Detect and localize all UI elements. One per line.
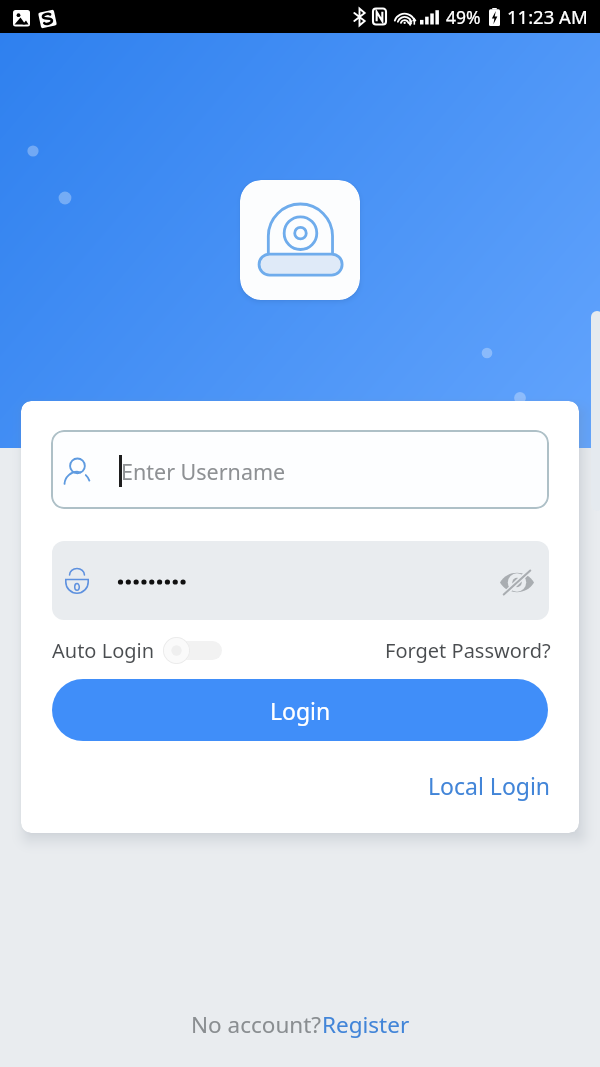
staticText: 11:23 AM (507, 4, 588, 29)
button[interactable]: Login (52, 679, 548, 741)
button[interactable]: Show password (491, 556, 543, 608)
staticText: Auto Login (52, 637, 155, 664)
button[interactable]: Forget Password? (385, 637, 551, 664)
staticText: No account? (191, 1009, 322, 1040)
button[interactable]: Auto Login (159, 631, 229, 675)
button[interactable]: Local Login (428, 770, 551, 801)
staticText: Enter Username (121, 457, 286, 486)
staticText: Login (270, 695, 331, 726)
button[interactable]: Show password (52, 541, 549, 620)
button[interactable]: Enter Username (51, 430, 549, 509)
staticText: 49% (446, 5, 481, 29)
button[interactable]: Register (322, 1009, 410, 1040)
